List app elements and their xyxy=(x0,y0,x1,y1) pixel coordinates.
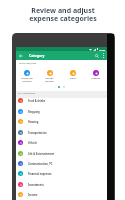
button[interactable]: Housing xyxy=(16,116,107,126)
staticText: Food & drinks xyxy=(28,99,46,102)
staticText: Financial expenses xyxy=(28,172,52,175)
staticText: Leasing xyxy=(91,77,100,80)
staticText: Life & Entertainment xyxy=(28,152,55,155)
staticText: Communication, PC xyxy=(28,162,53,165)
button[interactable]: Rent xyxy=(61,68,84,83)
staticText: Transportation xyxy=(28,131,47,134)
button[interactable]: Communication, PC xyxy=(16,158,107,168)
button[interactable]: Energy utilities xyxy=(38,68,61,83)
staticText: Vehicle xyxy=(28,141,37,144)
button[interactable]: More options xyxy=(100,52,107,59)
button[interactable]: Life & Entertainment xyxy=(16,148,107,158)
staticText: Income xyxy=(28,193,38,196)
button[interactable]: Shopping xyxy=(16,106,107,116)
button[interactable]: Leasing xyxy=(84,68,107,83)
button[interactable]: Income xyxy=(16,189,107,199)
staticText: 10:30 xyxy=(99,48,106,51)
staticText: Shopping xyxy=(28,110,40,113)
staticText: Rent xyxy=(70,77,76,80)
button[interactable]: Search xyxy=(93,52,100,59)
staticText: Housing xyxy=(28,120,39,123)
button[interactable]: Investments xyxy=(16,179,107,189)
staticText: Energy utilities xyxy=(45,77,54,83)
button[interactable]: Vehicle xyxy=(16,137,107,147)
button[interactable]: Food & drinks xyxy=(16,95,107,105)
button[interactable]: Phone cell services xyxy=(16,68,38,83)
staticText: MOST FREQUENT xyxy=(19,62,37,65)
staticText: ALL CATEGORIES xyxy=(18,92,36,95)
staticText: Review and adjust expense categories xyxy=(29,6,97,23)
staticText: Category xyxy=(29,53,45,58)
button[interactable]: Back xyxy=(17,52,24,59)
button[interactable]: Transportation xyxy=(16,127,107,137)
staticText: Investments xyxy=(28,183,44,186)
button[interactable]: Financial expenses xyxy=(16,168,107,178)
staticText: Phone cell services xyxy=(21,77,33,83)
